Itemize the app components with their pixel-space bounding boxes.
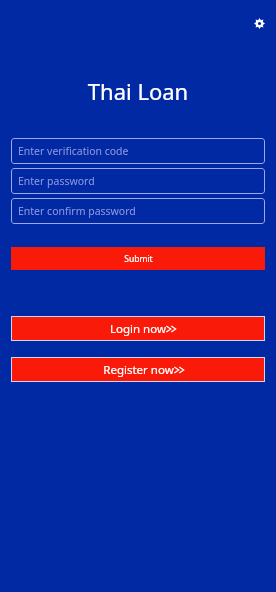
- staticText: Enter password: [18, 174, 95, 188]
- button[interactable]: Register now: [11, 357, 265, 382]
- button[interactable]: Enter verification code: [11, 138, 265, 164]
- button[interactable]: Submit: [11, 247, 265, 270]
- staticText: Thai Loan: [0, 76, 276, 106]
- staticText: Register now: [91, 362, 186, 378]
- staticText: Submit: [124, 253, 153, 265]
- staticText: Enter confirm password: [18, 204, 136, 218]
- button[interactable]: Login now: [11, 316, 265, 341]
- button[interactable]: Settings: [250, 14, 268, 32]
- staticText: Login now: [98, 321, 178, 337]
- button[interactable]: Enter confirm password: [11, 198, 265, 224]
- button[interactable]: Enter password: [11, 168, 265, 194]
- staticText: Enter verification code: [18, 144, 129, 158]
